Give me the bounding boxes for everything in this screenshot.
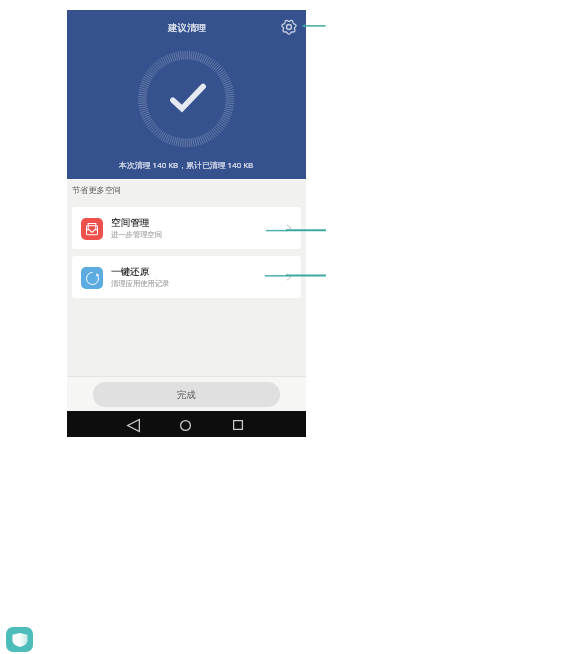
staticText: 进一步管理空间	[111, 230, 163, 239]
staticText: 建议清理	[168, 22, 206, 34]
staticText: 空间管理	[111, 217, 149, 229]
button[interactable]: Back	[120, 412, 146, 438]
button[interactable]: 完成	[93, 382, 280, 407]
staticText: 一键还原	[111, 266, 149, 278]
button[interactable]: Recents	[225, 412, 251, 438]
button[interactable]: 设置	[278, 16, 299, 37]
button[interactable]: 安全	[6, 627, 33, 652]
staticText: 清理应用使用记录	[111, 279, 170, 288]
button[interactable]: 一键还原	[72, 256, 301, 298]
staticText: 完成	[177, 389, 196, 401]
staticText: 节省更多空间	[72, 185, 122, 195]
button[interactable]: 空间管理	[72, 207, 301, 249]
staticText: 本次清理 140 KB，累计已清理 140 KB	[119, 160, 254, 171]
button[interactable]: Home	[172, 412, 198, 438]
